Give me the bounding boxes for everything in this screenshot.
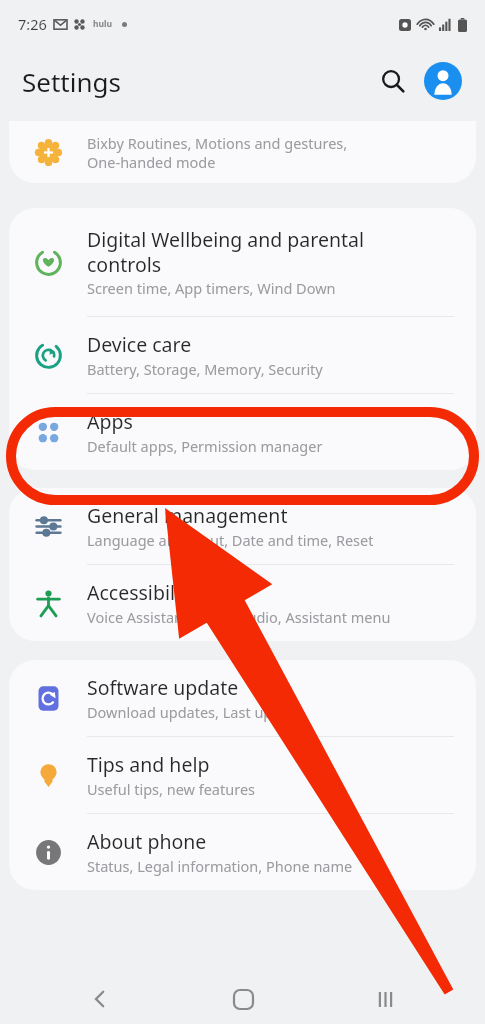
staticText: Language and input, Date and time, Reset — [87, 530, 374, 550]
staticText: Device care — [87, 331, 192, 358]
staticText: Default apps, Permission manager — [87, 436, 323, 456]
staticText: Status, Legal information, Phone name — [87, 856, 353, 876]
button[interactable]: Bixby Routines, Motions and gestures, On… — [9, 121, 476, 183]
staticText: hulu — [93, 18, 113, 30]
button[interactable]: Digital Wellbeing and parental controls — [9, 208, 476, 316]
staticText: Software update — [87, 674, 239, 701]
staticText: Download updates, Last update — [87, 702, 303, 722]
staticText: About phone — [87, 828, 207, 855]
staticText: Tips and help — [87, 751, 210, 778]
button[interactable]: Apps — [9, 394, 476, 470]
button[interactable]: Tips and help — [9, 737, 476, 813]
staticText: 7:26 — [18, 14, 47, 34]
staticText: Battery, Storage, Memory, Security — [87, 359, 323, 379]
button[interactable]: Home — [221, 977, 265, 1021]
button[interactable]: About phone — [9, 814, 476, 890]
staticText: General management — [87, 502, 288, 529]
button[interactable]: General management — [9, 488, 476, 564]
button[interactable]: Software update — [9, 660, 476, 736]
staticText: Screen time, App timers, Wind Down — [87, 278, 336, 298]
staticText: Useful tips, new features — [87, 779, 256, 799]
button[interactable]: Accessibility — [9, 565, 476, 641]
button[interactable]: Device care — [9, 317, 476, 393]
staticText: Apps — [87, 408, 133, 435]
button[interactable]: Search — [371, 59, 415, 103]
staticText: Settings — [22, 64, 121, 99]
staticText: Bixby Routines, Motions and gestures, On… — [87, 133, 348, 172]
staticText: Voice Assistant, Mono audio, Assistant m… — [87, 607, 391, 627]
button[interactable]: Back — [78, 977, 122, 1021]
staticText: Digital Wellbeing and parental controls — [87, 226, 365, 277]
staticText: Accessibility — [87, 579, 197, 606]
button[interactable]: Recents — [363, 977, 407, 1021]
button[interactable]: Account — [421, 59, 465, 103]
